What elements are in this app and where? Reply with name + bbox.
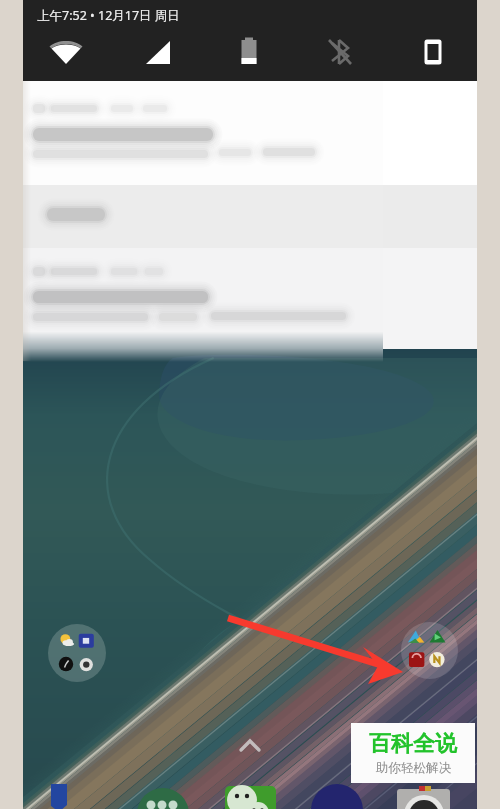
button[interactable]: Tools folder — [48, 624, 106, 682]
staticText: 助你轻松解决 — [376, 760, 451, 776]
staticText: 上午7:52 • 12月17日 周日 — [37, 7, 180, 24]
button[interactable]: Apps folder — [401, 622, 458, 679]
staticText: 百科全说 — [369, 730, 457, 758]
